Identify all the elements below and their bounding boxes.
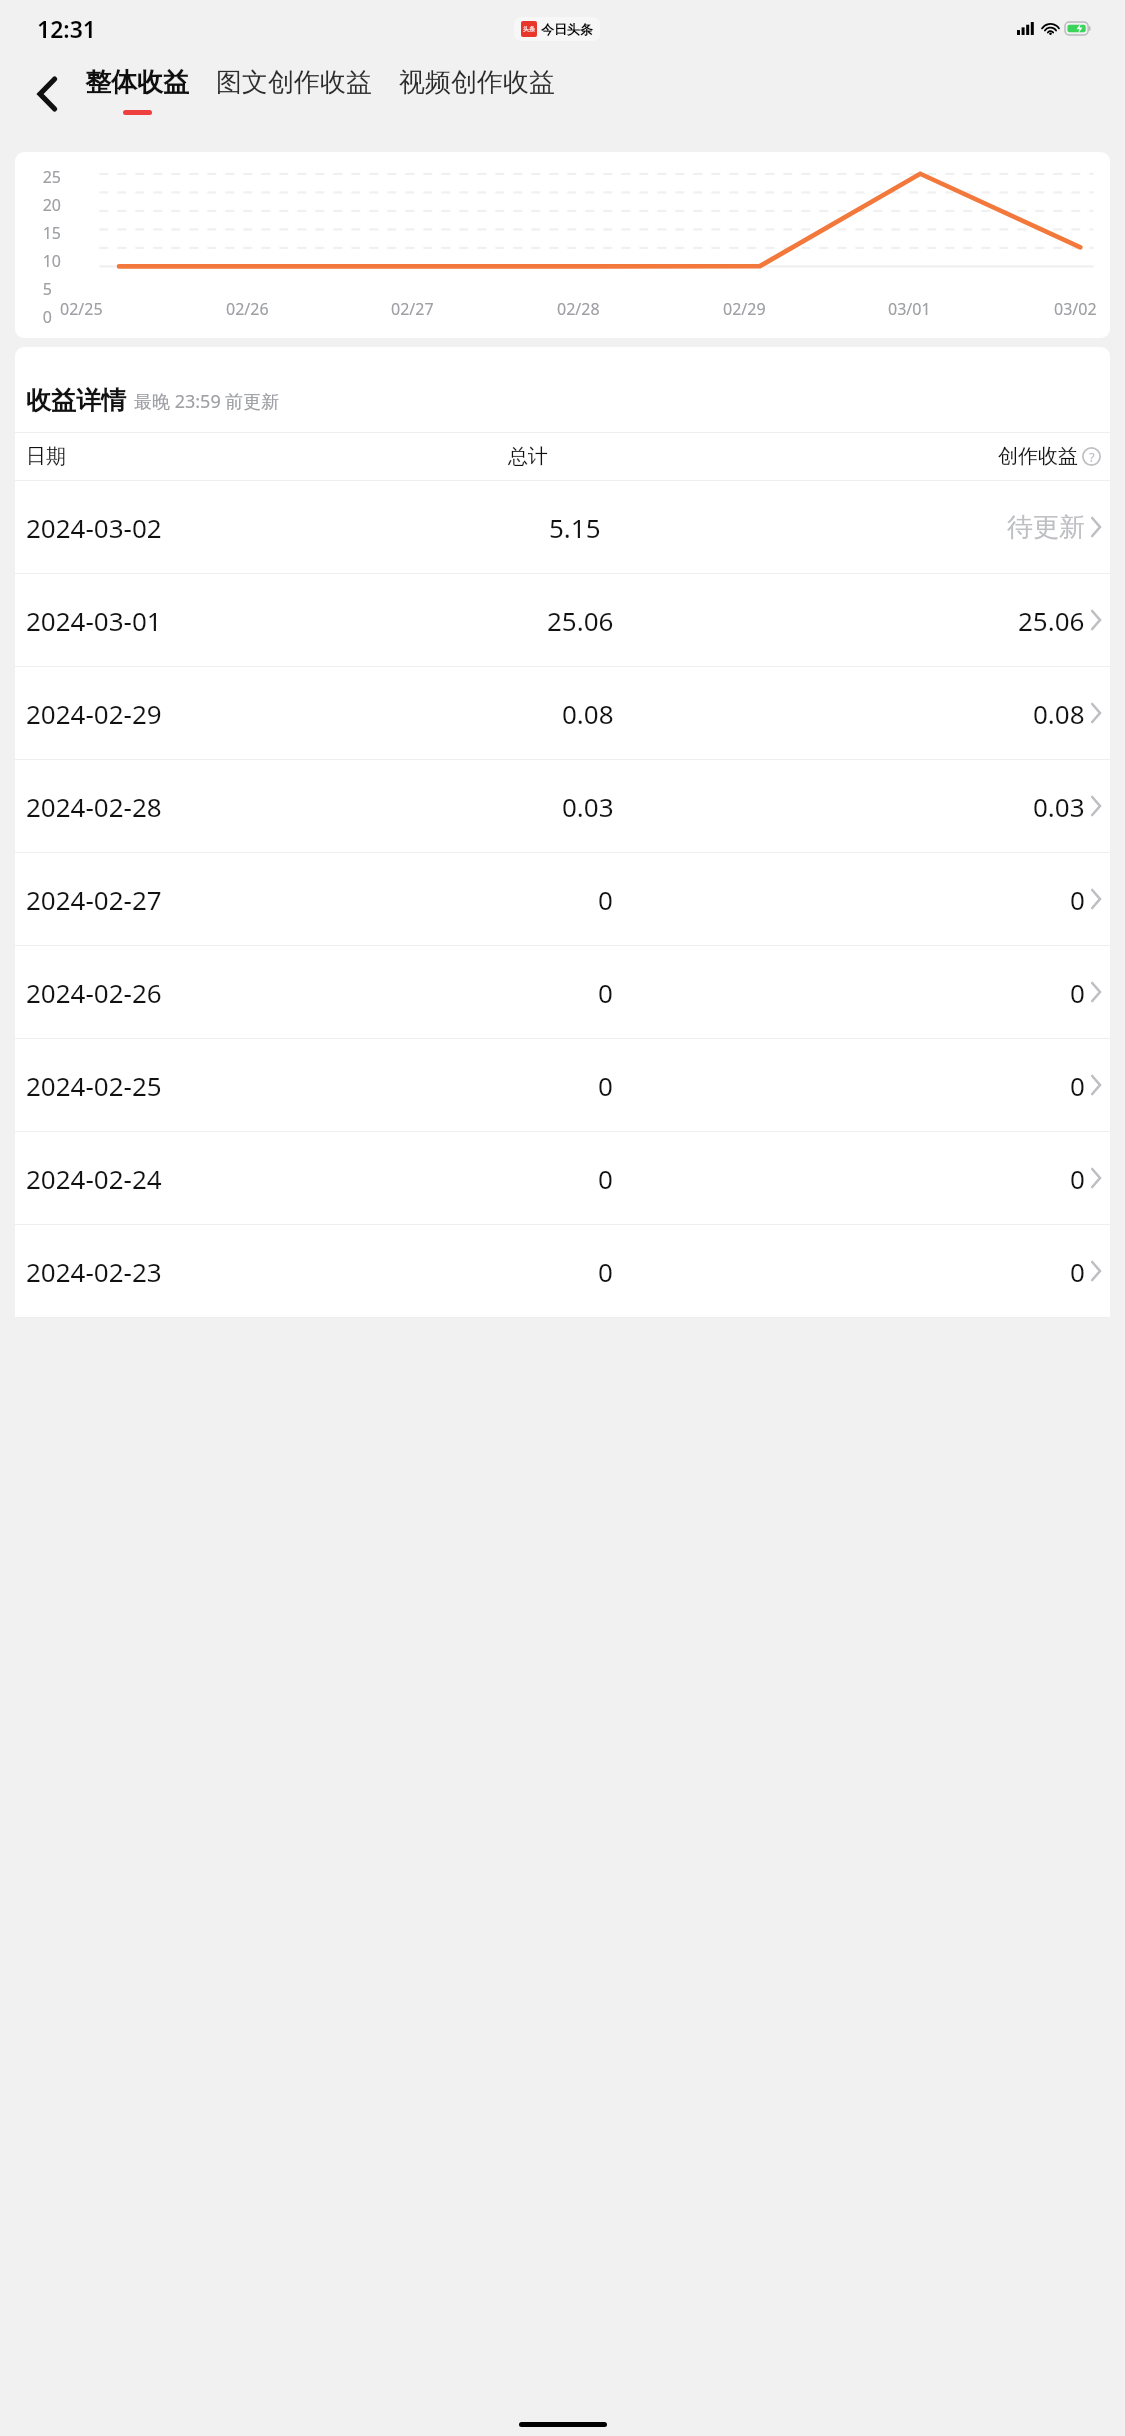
- staticText: 2024-02-23: [26, 1254, 162, 1289]
- staticText: 0.08: [562, 696, 614, 731]
- staticText: 15: [42, 222, 61, 240]
- staticText: 创作收益: [998, 444, 1078, 469]
- staticText: 今日头条: [541, 21, 593, 37]
- staticText: 0: [598, 1254, 613, 1289]
- button[interactable]: Back: [18, 65, 76, 123]
- staticText: 5.15: [549, 510, 601, 545]
- button[interactable]: 2024-02-26: [15, 946, 1110, 1038]
- button[interactable]: 2024-02-29: [15, 667, 1110, 759]
- staticText: 0: [598, 975, 613, 1010]
- staticText: 头条: [523, 25, 535, 33]
- staticText: 02/25: [60, 298, 103, 320]
- button[interactable]: 2024-03-02: [15, 481, 1110, 573]
- staticText: 2024-02-24: [26, 1161, 162, 1196]
- staticText: 视频创作收益: [399, 66, 555, 99]
- staticText: 2024-02-29: [26, 696, 162, 731]
- staticText: 10: [42, 250, 61, 268]
- staticText: 整体收益: [85, 66, 189, 99]
- staticText: 图文创作收益: [216, 66, 372, 99]
- staticText: 25.06: [547, 603, 614, 638]
- staticText: 0: [1070, 1254, 1085, 1289]
- staticText: 最晚 23:59 前更新: [134, 389, 280, 414]
- staticText: 0.03: [1033, 789, 1085, 824]
- staticText: 0: [1070, 882, 1085, 917]
- staticText: 03/02: [1054, 298, 1097, 320]
- staticText: 2024-02-28: [26, 789, 162, 824]
- staticText: 0: [42, 306, 52, 324]
- button[interactable]: Help: [1082, 447, 1101, 466]
- staticText: 收益详情: [26, 385, 126, 416]
- button[interactable]: 图文创作收益: [214, 66, 374, 115]
- staticText: 20: [42, 194, 61, 212]
- staticText: 2024-02-25: [26, 1068, 162, 1103]
- button[interactable]: 2024-03-01: [15, 574, 1110, 666]
- staticText: 日期: [26, 444, 66, 469]
- staticText: 02/29: [723, 298, 766, 320]
- staticText: 0.08: [1033, 696, 1085, 731]
- button[interactable]: 2024-02-27: [15, 853, 1110, 945]
- staticText: 2024-03-01: [26, 603, 162, 638]
- staticText: 12:31: [37, 13, 96, 44]
- button[interactable]: 2024-02-25: [15, 1039, 1110, 1131]
- staticText: 2024-03-02: [26, 510, 162, 545]
- staticText: 03/01: [888, 298, 931, 320]
- staticText: 5: [42, 278, 52, 296]
- staticText: 02/28: [557, 298, 600, 320]
- button[interactable]: 2024-02-28: [15, 760, 1110, 852]
- staticText: 25.06: [1018, 603, 1085, 638]
- staticText: 总计: [508, 444, 548, 469]
- staticText: 2024-02-26: [26, 975, 162, 1010]
- staticText: 0: [1070, 1068, 1085, 1103]
- button[interactable]: 2024-02-24: [15, 1132, 1110, 1224]
- staticText: 2024-02-27: [26, 882, 162, 917]
- staticText: 02/27: [391, 298, 434, 320]
- button[interactable]: 2024-02-23: [15, 1225, 1110, 1317]
- staticText: 0: [598, 1068, 613, 1103]
- staticText: 0: [1070, 975, 1085, 1010]
- staticText: 02/26: [226, 298, 269, 320]
- staticText: 0: [598, 1161, 613, 1196]
- staticText: 0: [598, 882, 613, 917]
- staticText: 25: [42, 166, 61, 184]
- staticText: ?: [1089, 448, 1095, 466]
- staticText: 0.03: [562, 789, 614, 824]
- staticText: 待更新: [1007, 511, 1085, 544]
- button[interactable]: 整体收益: [83, 66, 191, 115]
- staticText: 0: [1070, 1161, 1085, 1196]
- button[interactable]: 视频创作收益: [397, 66, 557, 115]
